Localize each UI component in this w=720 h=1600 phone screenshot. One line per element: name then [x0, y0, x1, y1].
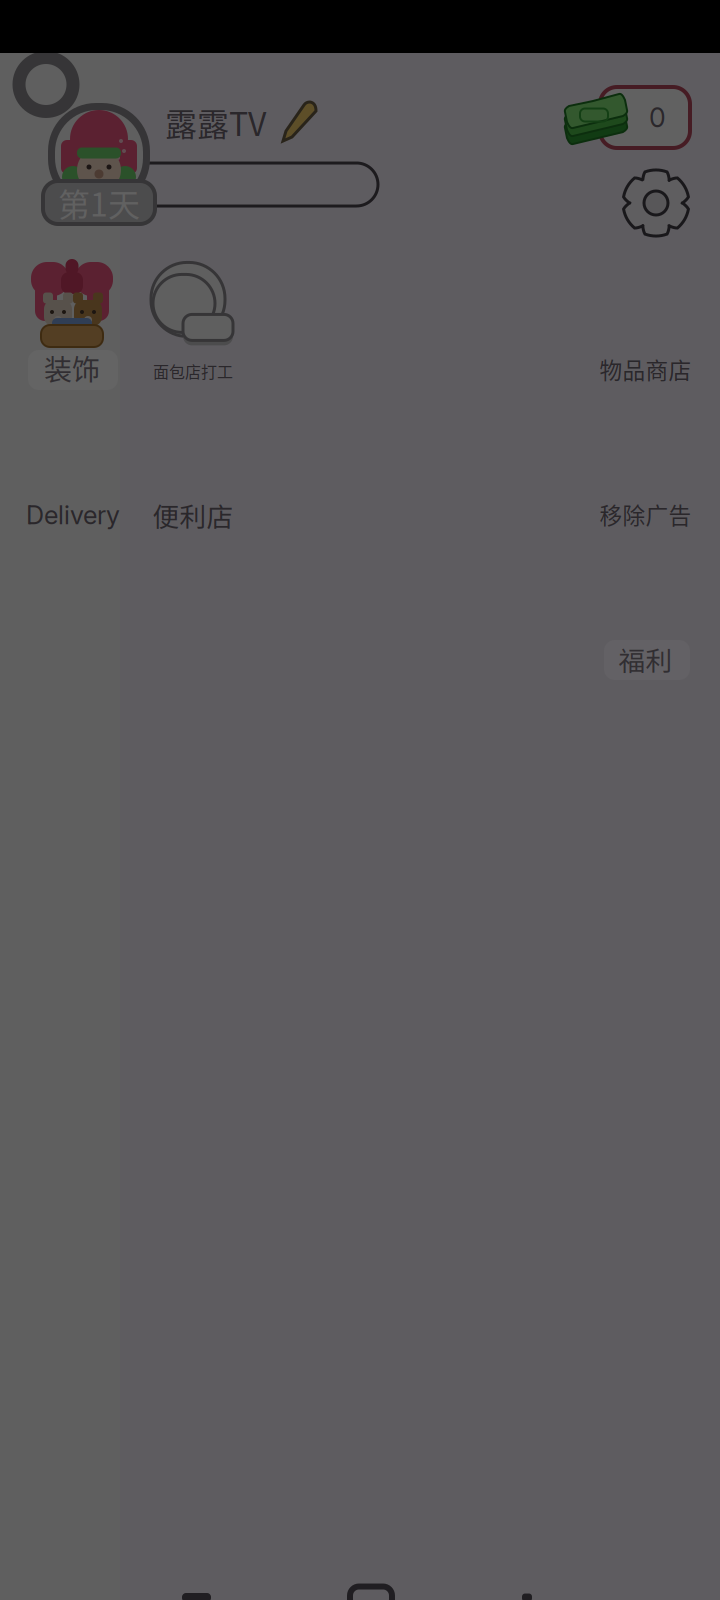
button[interactable]: Home: [182, 1593, 211, 1600]
staticText: 0: [649, 101, 666, 134]
button[interactable]: Settings: [620, 167, 692, 239]
button[interactable]: 移除广告: [569, 494, 720, 534]
button[interactable]: Profile: [522, 1593, 532, 1600]
staticText: 面包店打工: [153, 359, 233, 383]
staticText: 装饰: [44, 348, 100, 388]
button[interactable]: 便利店: [139, 497, 247, 533]
button[interactable]: Shop: [350, 1586, 392, 1600]
button[interactable]: Delivery: [12, 497, 134, 533]
button[interactable]: Coins: [558, 87, 690, 148]
staticText: 物品商店: [599, 353, 691, 385]
staticText: Delivery: [26, 500, 120, 530]
button[interactable]: 福利: [569, 639, 720, 679]
button[interactable]: 物品商店: [569, 349, 720, 389]
staticText: 便利店: [152, 496, 233, 534]
button[interactable]: Profile: [43, 103, 155, 224]
staticText: 福利: [618, 640, 672, 678]
button[interactable]: 装饰: [28, 258, 116, 384]
button[interactable]: 面包店打工: [149, 258, 237, 384]
staticText: 露露TV: [165, 99, 266, 145]
staticText: 移除广告: [599, 498, 691, 530]
staticText: 第1天: [58, 179, 140, 226]
button[interactable]: Edit name: [165, 100, 320, 144]
